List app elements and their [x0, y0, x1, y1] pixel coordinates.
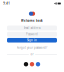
staticText: 9:41 — [3, 2, 10, 5]
button[interactable]: Sign in with Apple — [24, 62, 28, 66]
staticText: Welcome back — [21, 19, 43, 22]
staticText: Forgot your password? — [17, 46, 47, 49]
staticText: Password — [26, 32, 38, 36]
button[interactable]: Sign in with Facebook — [36, 62, 40, 66]
staticText: or — [30, 52, 33, 56]
staticText: Sign in — [27, 38, 37, 42]
button[interactable]: Email address — [7, 25, 57, 30]
button[interactable]: Forgot your password? — [17, 46, 47, 49]
button[interactable]: Sign in with Google — [30, 62, 34, 66]
button[interactable]: Sign in — [7, 38, 57, 42]
staticText: Email address — [23, 26, 40, 30]
button[interactable]: Password — [7, 32, 57, 37]
